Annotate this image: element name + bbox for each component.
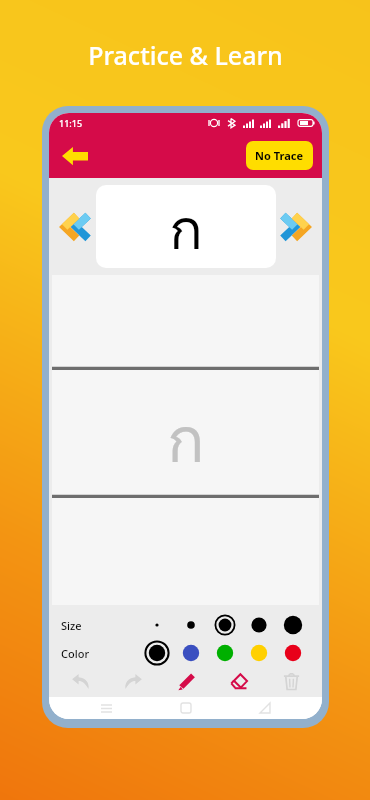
- staticText: ก: [169, 185, 203, 268]
- button[interactable]: Pencil: [164, 668, 208, 694]
- button[interactable]: Back: [58, 139, 92, 173]
- button[interactable]: Brush size 3: [208, 611, 242, 639]
- button[interactable]: Drawing canvas: [52, 275, 319, 605]
- staticText: Practice & Learn: [88, 38, 283, 72]
- button[interactable]: Color 3: [208, 639, 242, 667]
- button[interactable]: Brush size 4: [242, 611, 276, 639]
- staticText: Size: [61, 618, 82, 633]
- button[interactable]: Color 5: [276, 639, 310, 667]
- button[interactable]: Previous letter: [55, 206, 93, 248]
- button[interactable]: Back: [243, 698, 287, 718]
- button[interactable]: Color 4: [242, 639, 276, 667]
- staticText: 11:15: [59, 117, 83, 129]
- button[interactable]: Color 2: [174, 639, 208, 667]
- staticText: ก: [167, 391, 205, 490]
- button[interactable]: Redo: [111, 668, 155, 694]
- button[interactable]: Brush size 1: [140, 611, 174, 639]
- button[interactable]: Undo: [58, 668, 102, 694]
- button[interactable]: ก: [96, 185, 276, 268]
- button[interactable]: Color 1: [140, 639, 174, 667]
- button[interactable]: Home: [164, 698, 208, 718]
- button[interactable]: Brush size 5: [276, 611, 310, 639]
- staticText: Color: [61, 646, 90, 661]
- button[interactable]: Eraser: [216, 668, 260, 694]
- button[interactable]: Recent apps: [84, 698, 128, 718]
- button[interactable]: No Trace: [246, 141, 313, 170]
- button[interactable]: Brush size 2: [174, 611, 208, 639]
- staticText: No Trace: [255, 148, 304, 163]
- button[interactable]: Delete: [269, 668, 313, 694]
- button[interactable]: Next letter: [278, 206, 316, 248]
